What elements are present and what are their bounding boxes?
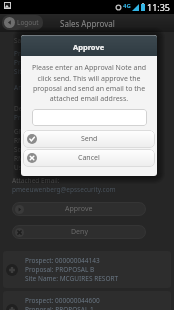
button[interactable] <box>32 109 147 126</box>
staticText: Sold: 2014-02-11 <box>14 145 174 154</box>
staticText: RMR: 120.00 <box>14 136 174 145</box>
staticText: Proposal: PROPOSAL 1 <box>25 305 94 310</box>
staticText: 4G <box>123 2 131 10</box>
staticText: Please enter an Approval Note and click … <box>30 63 148 103</box>
staticText: RMR Rate: 0.35 <box>14 154 174 163</box>
staticText: Prospect: 000000044143 <box>25 256 100 265</box>
staticText: Proposal B - Upgrade <box>14 113 174 122</box>
button[interactable]: Prospect: 000000044600 <box>3 291 171 310</box>
staticText: 11:35 <box>147 1 171 13</box>
staticText: Details: <box>14 104 174 113</box>
staticText: Attached Email: <box>12 176 174 185</box>
button[interactable]: Deny <box>12 225 146 239</box>
staticText: Approve <box>65 204 93 214</box>
staticText: Proposal: PROPOSAL B <box>25 265 95 274</box>
staticText: Site Name: MCGUIRES RESORT <box>25 274 119 283</box>
staticText: Prospect: 000000044143 <box>14 49 174 58</box>
button[interactable]: Prospect: 000000044143 <box>3 251 171 288</box>
staticText: Sales Proposal Approval <box>14 36 174 45</box>
staticText: Send <box>81 134 98 144</box>
staticText: Logout <box>17 18 39 27</box>
staticText: Prospect: 000000044600 <box>25 296 100 305</box>
staticText: Approve <box>73 42 105 52</box>
staticText: Deny <box>71 227 88 237</box>
button[interactable]: Cancel <box>23 149 155 167</box>
staticText: Sales Approval <box>60 18 115 29</box>
button[interactable]: Send <box>23 130 155 148</box>
staticText: Amount: $12,450.00 <box>14 83 174 92</box>
staticText: Proposal: PROPOSAL B <box>14 58 174 67</box>
staticText: Cancel <box>78 153 100 163</box>
staticText: User: pmeeuwenberg <box>14 163 174 172</box>
staticText: pmeeuwenberg@epssecurity.com <box>12 185 174 194</box>
button[interactable]: Logout <box>2 15 43 30</box>
staticText: Site Name: MCGUIRES RESORT <box>14 67 174 76</box>
staticText: GM%: 41.2 <box>14 127 174 136</box>
button[interactable]: Approve <box>12 202 146 216</box>
